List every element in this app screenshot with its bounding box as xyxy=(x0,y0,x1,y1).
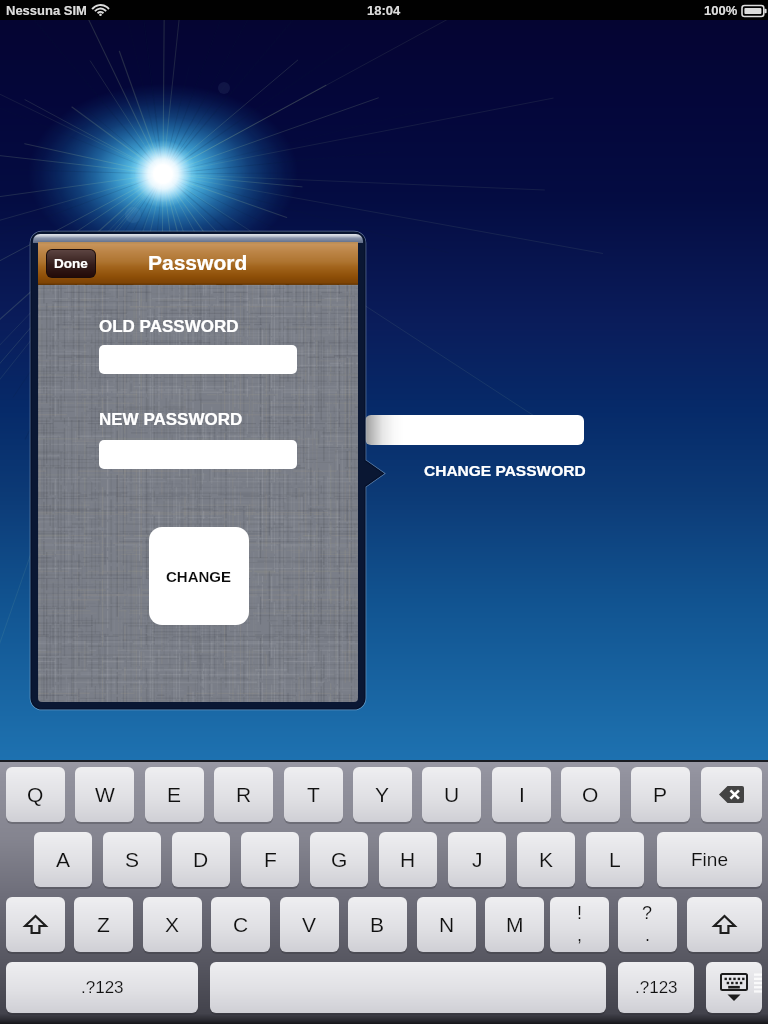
staticText: T xyxy=(307,783,320,806)
staticText: F xyxy=(264,848,277,871)
staticText: E xyxy=(167,783,182,806)
button[interactable]: I xyxy=(492,767,551,822)
staticText: . xyxy=(645,925,651,945)
staticText: G xyxy=(331,848,348,871)
staticText: R xyxy=(236,783,252,806)
button[interactable]: .?123 xyxy=(6,962,198,1013)
staticText: I xyxy=(519,783,525,806)
staticText: Z xyxy=(97,913,110,936)
staticText: J xyxy=(472,848,483,871)
button[interactable]: F xyxy=(241,832,299,887)
button[interactable]: M xyxy=(485,897,544,952)
button[interactable]: J xyxy=(448,832,506,887)
button[interactable]: Done xyxy=(47,250,95,277)
staticText: L xyxy=(609,848,621,871)
staticText: X xyxy=(165,913,180,936)
staticText: Fine xyxy=(691,849,728,870)
staticText: OLD PASSWORD xyxy=(99,317,239,336)
staticText: A xyxy=(56,848,71,871)
staticText: Password xyxy=(148,251,248,274)
button[interactable] xyxy=(99,440,297,469)
staticText: Done xyxy=(54,256,88,271)
staticText: O xyxy=(582,783,599,806)
staticText: W xyxy=(95,783,115,806)
button[interactable]: Backspace xyxy=(701,767,762,822)
button[interactable]: CHANGE xyxy=(149,527,249,625)
staticText: ! xyxy=(577,903,583,923)
button[interactable]: V xyxy=(280,897,339,952)
button[interactable]: U xyxy=(422,767,481,822)
button[interactable]: N xyxy=(417,897,476,952)
button[interactable]: B xyxy=(348,897,407,952)
button[interactable]: H xyxy=(379,832,437,887)
staticText: K xyxy=(539,848,554,871)
button[interactable]: ! xyxy=(550,897,609,952)
button[interactable]: E xyxy=(145,767,204,822)
button[interactable]: Fine xyxy=(657,832,762,887)
button[interactable]: .?123 xyxy=(618,962,694,1013)
button[interactable]: Y xyxy=(353,767,412,822)
staticText: H xyxy=(400,848,416,871)
button[interactable]: C xyxy=(211,897,270,952)
staticText: Q xyxy=(27,783,44,806)
staticText: B xyxy=(370,913,385,936)
button[interactable]: Q xyxy=(6,767,65,822)
button[interactable] xyxy=(99,345,297,374)
button[interactable]: Shift xyxy=(687,897,762,952)
staticText: P xyxy=(653,783,668,806)
button[interactable] xyxy=(365,415,584,445)
button[interactable]: L xyxy=(586,832,644,887)
staticText: V xyxy=(302,913,317,936)
button[interactable]: Z xyxy=(74,897,133,952)
button[interactable]: T xyxy=(284,767,343,822)
staticText: Y xyxy=(375,783,390,806)
button[interactable]: W xyxy=(75,767,134,822)
button[interactable]: D xyxy=(172,832,230,887)
button[interactable]: O xyxy=(561,767,620,822)
button[interactable]: Shift xyxy=(6,897,65,952)
button[interactable]: R xyxy=(214,767,273,822)
staticText: CHANGE PASSWORD xyxy=(424,462,586,479)
staticText: C xyxy=(233,913,249,936)
button[interactable]: A xyxy=(34,832,92,887)
staticText: , xyxy=(577,925,583,945)
staticText: .?123 xyxy=(81,978,124,997)
button[interactable]: G xyxy=(310,832,368,887)
button[interactable]: P xyxy=(631,767,690,822)
button[interactable]: X xyxy=(143,897,202,952)
staticText: 100% xyxy=(704,3,738,18)
button[interactable]: Space xyxy=(210,962,606,1013)
staticText: S xyxy=(125,848,140,871)
staticText: U xyxy=(444,783,460,806)
button[interactable]: K xyxy=(517,832,575,887)
button[interactable]: Hide keyboard xyxy=(706,962,762,1013)
staticText: Nessuna SIM xyxy=(6,3,87,18)
button[interactable]: S xyxy=(103,832,161,887)
staticText: NEW PASSWORD xyxy=(99,410,243,429)
staticText: 18:04 xyxy=(367,3,401,18)
staticText: D xyxy=(193,848,209,871)
staticText: .?123 xyxy=(635,978,678,997)
staticText: ? xyxy=(642,903,653,923)
staticText: N xyxy=(439,913,455,936)
staticText: CHANGE xyxy=(166,568,232,585)
staticText: M xyxy=(506,913,524,936)
button[interactable]: ? xyxy=(618,897,677,952)
